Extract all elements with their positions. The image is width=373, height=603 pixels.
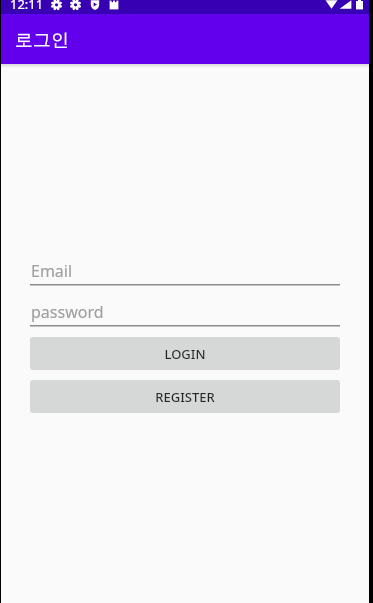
other: Wi-Fi <box>325 0 338 10</box>
other: Battery <box>356 0 363 10</box>
other: Mobile signal <box>339 0 352 10</box>
button[interactable]: REGISTER <box>30 380 340 413</box>
other: Play Protect <box>90 0 100 10</box>
other: Calendar <box>109 0 119 10</box>
other: Settings <box>51 0 62 10</box>
other: Developer options <box>70 0 81 10</box>
staticText: LOGIN <box>164 345 206 363</box>
button[interactable]: password <box>30 294 340 327</box>
staticText: 로그인 <box>15 29 69 52</box>
staticText: password <box>31 301 104 323</box>
staticText: REGISTER <box>155 388 215 406</box>
button[interactable]: Email <box>30 253 340 286</box>
staticText: 12:11 <box>10 0 44 9</box>
button[interactable]: LOGIN <box>30 337 340 370</box>
staticText: Email <box>31 260 73 282</box>
